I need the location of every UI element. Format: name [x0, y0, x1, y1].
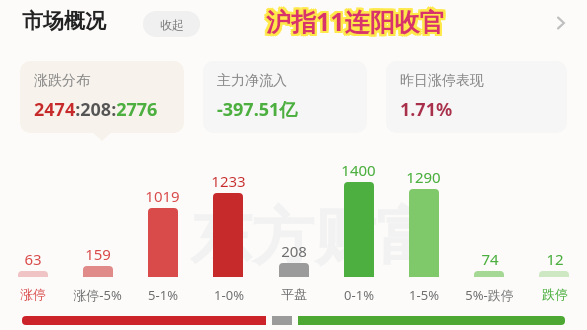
- button[interactable]: [0, 150, 65, 318]
- staticText: 12: [546, 249, 564, 269]
- staticText: 东方财富: [190, 198, 438, 276]
- staticText: 主力净流入: [217, 72, 287, 90]
- staticText: 市场概况: [22, 8, 106, 34]
- staticText: 1233: [211, 171, 246, 191]
- button[interactable]: [457, 150, 522, 318]
- staticText: 沪指11连阳收官: [264, 6, 443, 40]
- button[interactable]: [196, 150, 261, 318]
- button[interactable]: 主力净流入: [203, 61, 367, 133]
- staticText: 涨停-5%: [73, 286, 122, 304]
- button[interactable]: [130, 150, 195, 318]
- button[interactable]: [65, 150, 130, 318]
- staticText: 沪指11连阳收官: [264, 2, 443, 36]
- staticText: 沪指11连阳收官: [266, 2, 445, 36]
- button[interactable]: [522, 150, 587, 318]
- staticText: -397.51亿: [217, 97, 298, 122]
- staticText: 159: [85, 244, 111, 264]
- staticText: 1-0%: [214, 286, 244, 304]
- staticText: 74: [481, 249, 499, 269]
- staticText: 63: [24, 249, 42, 269]
- staticText: 1019: [145, 186, 180, 206]
- button[interactable]: [391, 150, 456, 318]
- button[interactable]: 昨日涨停表现: [386, 61, 567, 133]
- staticText: 沪指11连阳收官: [264, 4, 443, 38]
- staticText: 208: [281, 241, 307, 261]
- staticText: 跌停: [542, 286, 568, 302]
- button[interactable]: 收起: [143, 11, 200, 37]
- staticText: 1.71%: [400, 97, 453, 122]
- staticText: 平盘: [281, 286, 307, 302]
- button[interactable]: [326, 150, 391, 318]
- staticText: 1290: [406, 167, 441, 187]
- staticText: 沪指11连阳收官: [268, 4, 447, 38]
- staticText: 0-1%: [344, 286, 374, 304]
- staticText: 1-5%: [409, 286, 439, 304]
- button[interactable]: 涨跌分布: [20, 61, 184, 133]
- staticText: 5%-跌停: [465, 286, 514, 304]
- button[interactable]: [261, 150, 326, 318]
- staticText: 1400: [341, 160, 376, 180]
- staticText: 涨跌分布: [34, 72, 90, 90]
- staticText: 沪指11连阳收官: [266, 6, 445, 40]
- staticText: 沪指11连阳收官: [268, 2, 447, 36]
- staticText: 沪指11连阳收官: [268, 6, 447, 40]
- staticText: 沪指11连阳收官: [266, 4, 445, 38]
- staticText: 涨停: [20, 286, 46, 302]
- staticText: 昨日涨停表现: [400, 72, 484, 90]
- staticText: 收起: [160, 17, 184, 32]
- staticText: 2474:208:2776: [34, 97, 158, 122]
- button[interactable]: 更多: [546, 8, 576, 38]
- staticText: 5-1%: [148, 286, 178, 304]
- button[interactable]: [22, 316, 565, 325]
